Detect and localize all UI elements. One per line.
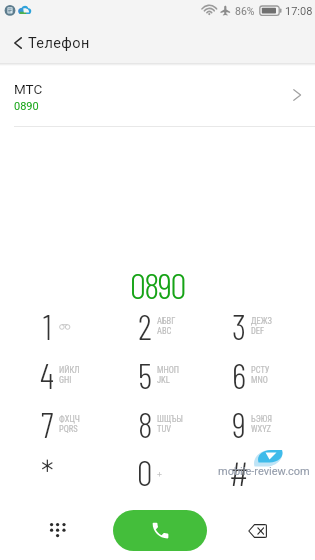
staticText: mobile-review.com <box>218 465 310 478</box>
staticText: PQRS <box>59 424 78 434</box>
button[interactable]: Delete <box>237 511 277 551</box>
staticText: МТС <box>14 81 43 97</box>
button[interactable]: 2 <box>123 301 191 350</box>
staticText: 2 <box>138 305 152 347</box>
staticText: ABC <box>157 326 172 336</box>
staticText: 17:08 <box>285 5 313 18</box>
button[interactable]: МТС <box>0 64 315 126</box>
button[interactable]: * <box>25 447 93 496</box>
staticText: 0 <box>137 451 153 493</box>
button[interactable]: Call <box>113 510 207 551</box>
staticText: АБВГ <box>157 316 176 326</box>
button[interactable]: 6 <box>217 350 285 399</box>
button[interactable]: 5 <box>123 350 191 399</box>
staticText: 8 <box>138 403 153 445</box>
button[interactable]: 4 <box>25 350 93 399</box>
staticText: 0890 <box>14 100 39 113</box>
staticText: ФХЦЧ <box>59 414 80 424</box>
staticText: # <box>229 451 249 493</box>
staticText: + <box>157 467 162 480</box>
staticText: TUV <box>157 424 171 434</box>
staticText: 5 <box>138 354 153 396</box>
button[interactable]: 1 <box>25 301 93 350</box>
staticText: ИЙКЛ <box>59 365 80 375</box>
button[interactable]: 0 <box>123 447 191 496</box>
staticText: 7 <box>41 403 54 445</box>
staticText: 4 <box>40 354 54 396</box>
staticText: WXYZ <box>251 424 272 434</box>
staticText: 0890 <box>130 263 185 305</box>
button[interactable]: Keypad <box>38 511 78 551</box>
staticText: 86% <box>235 5 255 17</box>
button[interactable]: 9 <box>217 399 285 448</box>
staticText: РСТУ <box>251 365 270 375</box>
staticText: Телефон <box>28 35 90 52</box>
staticText: * <box>41 451 54 493</box>
staticText: МНОП <box>157 365 180 375</box>
staticText: 3 <box>232 305 247 347</box>
staticText: ЬЭЮЯ <box>251 414 272 424</box>
staticText: GHI <box>59 375 72 385</box>
staticText: ДЕЖЗ <box>251 316 272 326</box>
staticText: 1 <box>43 305 52 347</box>
button[interactable]: Back <box>3 25 32 60</box>
button[interactable]: 3 <box>217 301 285 350</box>
button[interactable]: # <box>217 447 285 496</box>
button[interactable]: 8 <box>123 399 191 448</box>
button[interactable]: 7 <box>25 399 93 448</box>
staticText: MNO <box>251 375 268 385</box>
staticText: 9 <box>232 403 246 445</box>
staticText: DEF <box>251 326 265 336</box>
staticText: 6 <box>232 354 247 396</box>
staticText: JKL <box>157 375 170 385</box>
staticText: ШЩЪЫ <box>157 414 184 424</box>
